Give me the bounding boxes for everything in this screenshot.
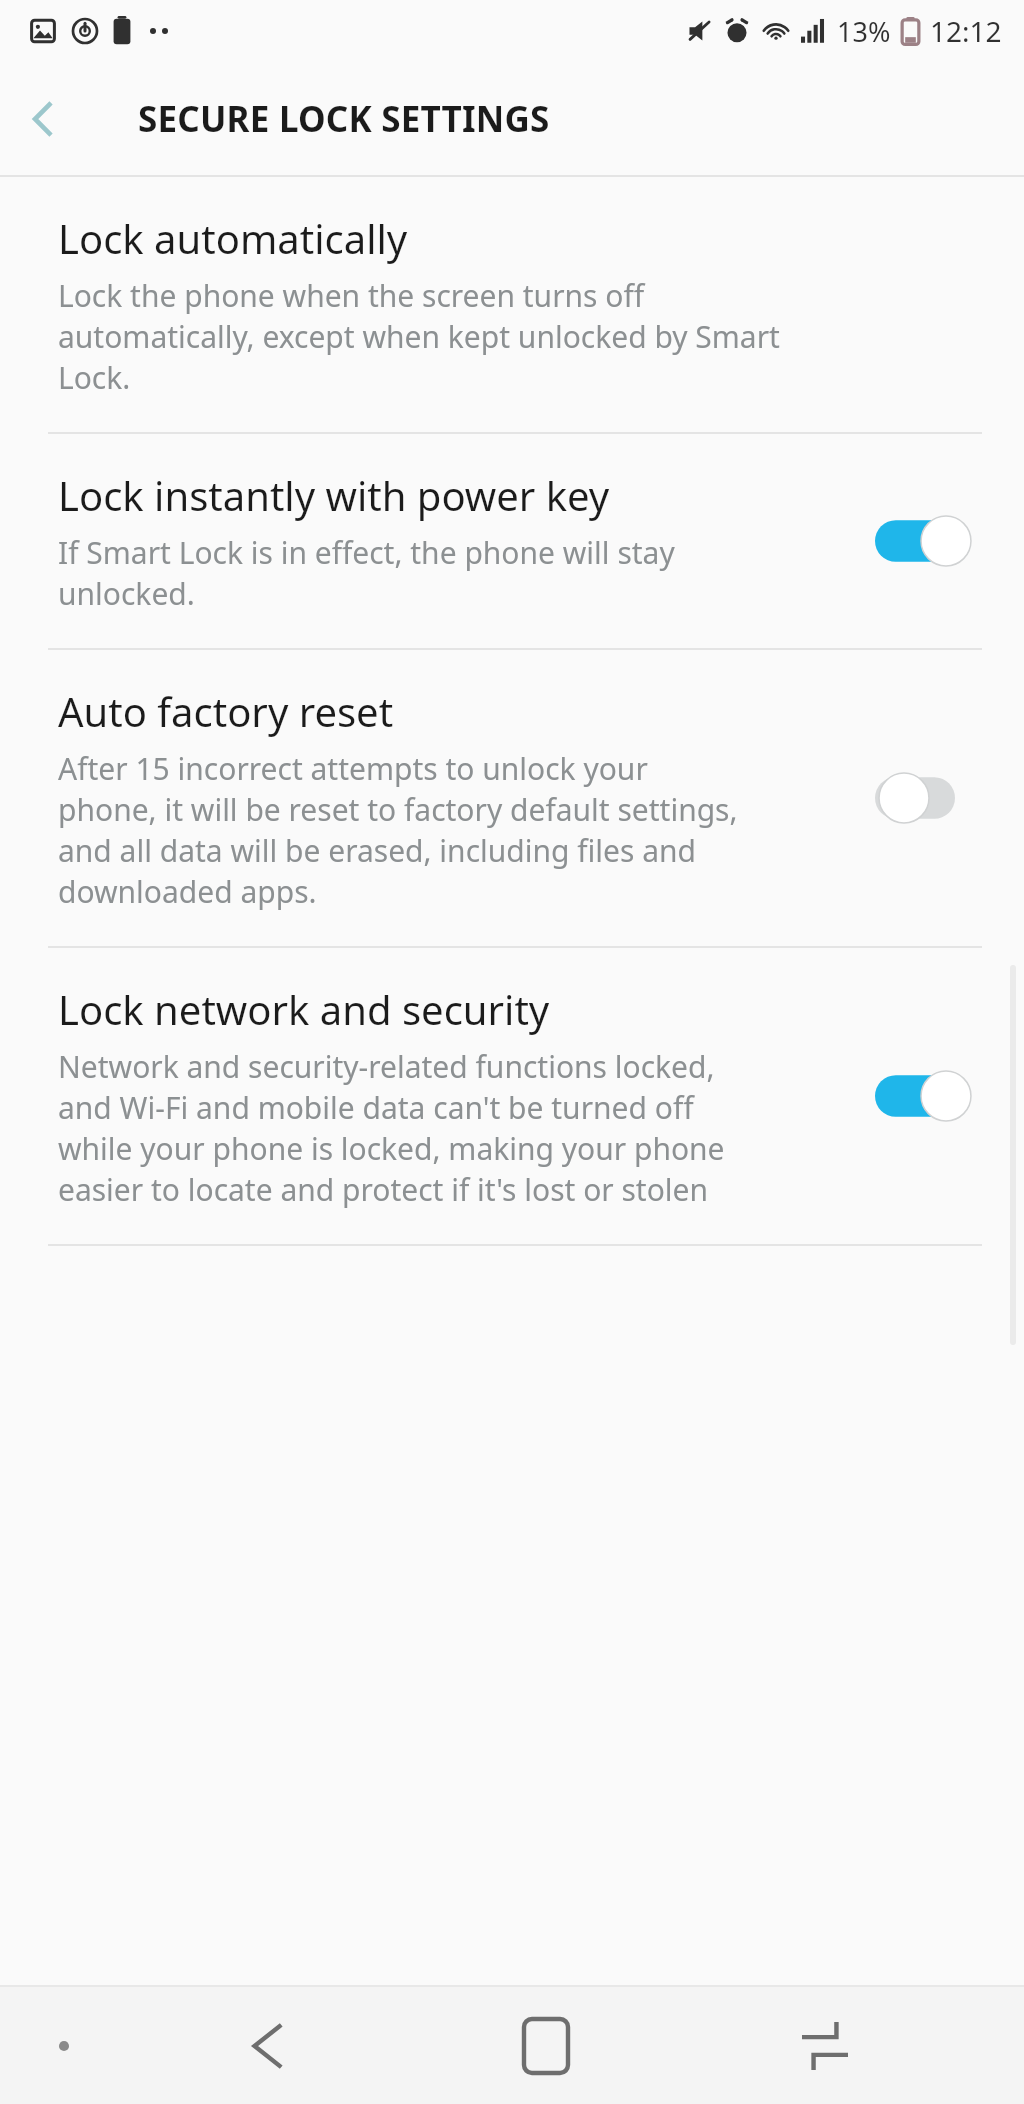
staticText: 12:12 [930, 12, 1002, 50]
staticText: Auto factory reset [58, 684, 394, 738]
staticText: If Smart Lock is in effect, the phone wi… [58, 532, 675, 614]
staticText: Lock automatically [58, 211, 408, 265]
staticText: Network and security-related functions l… [58, 1046, 725, 1210]
button[interactable]: Lock automatically [0, 177, 1024, 432]
staticText: 13% [837, 13, 891, 50]
button[interactable]: Back [128, 1987, 406, 2104]
staticText: After 15 incorrect attempts to unlock yo… [58, 748, 738, 912]
button[interactable]: Recents [685, 1987, 964, 2104]
button[interactable]: Off [866, 762, 984, 834]
button[interactable]: Auto factory reset [0, 650, 1024, 946]
staticText: Lock network and security [58, 982, 550, 1036]
button[interactable]: Lock instantly with power key [0, 434, 1024, 648]
button[interactable]: Menu [0, 1987, 128, 2104]
button[interactable]: Back [0, 76, 86, 162]
button[interactable]: On [866, 1060, 984, 1132]
staticText: Lock the phone when the screen turns off… [58, 275, 780, 398]
button[interactable]: Home [406, 1987, 685, 2104]
button[interactable]: On [866, 505, 984, 577]
staticText: SECURE LOCK SETTINGS [138, 95, 550, 143]
button[interactable]: Lock network and security [0, 948, 1024, 1244]
staticText: Lock instantly with power key [58, 468, 610, 522]
